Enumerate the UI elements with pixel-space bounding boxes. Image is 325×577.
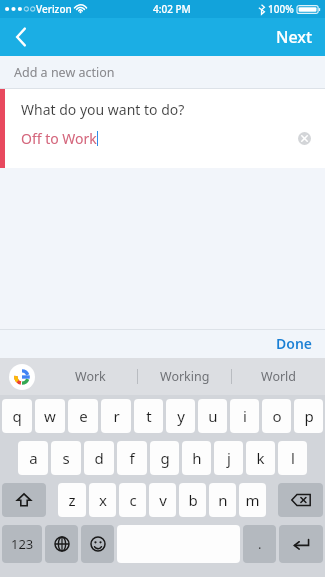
button[interactable]: l: [278, 441, 307, 475]
button[interactable]: s: [51, 441, 81, 475]
button[interactable]: e: [68, 399, 98, 433]
staticText: m: [245, 490, 260, 510]
staticText: Working: [160, 368, 210, 385]
staticText: Next: [276, 26, 313, 48]
button[interactable]: Off to Work: [21, 125, 325, 151]
button[interactable]: f: [117, 441, 147, 475]
button[interactable]: Switch keyboard: [45, 525, 78, 563]
staticText: a: [29, 448, 38, 468]
staticText: Add a new action: [14, 64, 115, 81]
button[interactable]: Clear text: [291, 125, 317, 151]
staticText: 123: [11, 535, 34, 553]
button[interactable]: g: [150, 441, 179, 475]
button[interactable]: Google: [9, 364, 35, 390]
staticText: l: [291, 448, 295, 468]
staticText: w: [44, 406, 56, 426]
staticText: v: [159, 490, 167, 510]
staticText: r: [113, 406, 120, 426]
button[interactable]: Next: [264, 18, 325, 56]
button[interactable]: .: [243, 525, 276, 563]
staticText: 4:02 PM: [153, 2, 191, 16]
button[interactable]: n: [209, 483, 236, 517]
button[interactable]: World: [232, 358, 325, 395]
staticText: k: [256, 448, 265, 468]
staticText: s: [62, 448, 70, 468]
button[interactable]: c: [119, 483, 146, 517]
staticText: q: [12, 406, 22, 426]
staticText: t: [146, 406, 152, 426]
button[interactable]: t: [134, 399, 163, 433]
button[interactable]: Done: [264, 329, 325, 358]
button[interactable]: w: [35, 399, 65, 433]
staticText: x: [99, 490, 107, 510]
staticText: Work: [75, 368, 106, 385]
staticText: y: [177, 406, 185, 426]
staticText: j: [227, 448, 231, 468]
staticText: o: [272, 406, 282, 426]
staticText: d: [94, 448, 104, 468]
staticText: i: [243, 406, 247, 426]
button[interactable]: d: [84, 441, 114, 475]
staticText: What do you want to do?: [21, 100, 185, 119]
button[interactable]: o: [262, 399, 291, 433]
button[interactable]: m: [239, 483, 266, 517]
button[interactable]: x: [89, 483, 116, 517]
staticText: n: [218, 490, 228, 510]
button[interactable]: u: [198, 399, 227, 433]
staticText: e: [79, 406, 88, 426]
button[interactable]: j: [214, 441, 243, 475]
button[interactable]: Return: [279, 525, 323, 563]
button[interactable]: q: [2, 399, 32, 433]
staticText: u: [208, 406, 218, 426]
staticText: z: [68, 490, 76, 510]
staticText: Verizon: [36, 2, 72, 16]
button[interactable]: p: [294, 399, 323, 433]
button[interactable]: v: [149, 483, 176, 517]
staticText: f: [129, 448, 135, 468]
button[interactable]: Backspace: [278, 483, 323, 517]
staticText: .: [258, 535, 262, 553]
button[interactable]: 123: [2, 525, 42, 563]
button[interactable]: a: [18, 441, 48, 475]
button[interactable]: Working: [138, 358, 231, 395]
staticText: c: [129, 490, 137, 510]
staticText: Done: [276, 334, 313, 353]
button[interactable]: r: [101, 399, 131, 433]
button[interactable]: y: [166, 399, 195, 433]
staticText: 100%: [268, 2, 294, 16]
button[interactable]: k: [246, 441, 275, 475]
button[interactable]: Back: [0, 18, 42, 56]
staticText: g: [160, 448, 170, 468]
staticText: Off to Work: [21, 129, 97, 148]
button[interactable]: Emoji: [81, 525, 114, 563]
staticText: World: [261, 368, 297, 385]
button[interactable]: h: [182, 441, 211, 475]
staticText: b: [188, 490, 198, 510]
button[interactable]: z: [58, 483, 86, 517]
staticText: h: [192, 448, 202, 468]
button[interactable]: b: [179, 483, 206, 517]
button[interactable]: Shift: [2, 483, 46, 517]
button[interactable]: i: [230, 399, 259, 433]
button[interactable]: Work: [43, 358, 137, 395]
staticText: p: [304, 406, 314, 426]
